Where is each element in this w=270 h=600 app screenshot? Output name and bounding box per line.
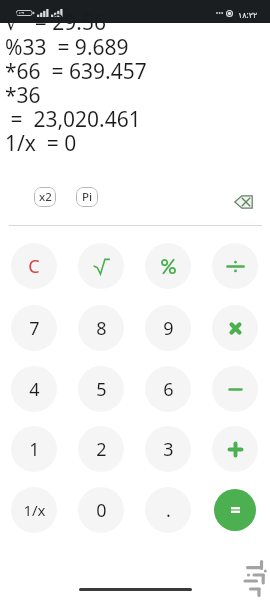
- button[interactable]: .: [145, 487, 191, 533]
- staticText: x2: [39, 189, 52, 205]
- staticText: 2: [96, 437, 107, 462]
- button[interactable]: Equals: [214, 489, 256, 531]
- staticText: 9: [163, 316, 174, 341]
- staticText: 6: [163, 377, 174, 402]
- button[interactable]: 9: [145, 305, 191, 351]
- button[interactable]: Pi: [76, 187, 98, 207]
- staticText: 5: [96, 377, 107, 402]
- staticText: Pi: [82, 189, 93, 205]
- button[interactable]: 6: [145, 366, 191, 412]
- button[interactable]: 3: [145, 426, 191, 472]
- button[interactable]: 1/x: [11, 487, 57, 533]
- button[interactable]: 1: [11, 426, 57, 472]
- button[interactable]: 0: [78, 487, 124, 533]
- button[interactable]: C: [11, 243, 57, 289]
- button[interactable]: 5: [78, 366, 124, 412]
- button[interactable]: x2: [34, 187, 56, 207]
- staticText: 1: [29, 437, 40, 462]
- button[interactable]: Backspace: [230, 190, 257, 213]
- staticText: ۱۸:۲۲: [238, 9, 258, 20]
- staticText: 1/x: [23, 500, 46, 520]
- staticText: .: [166, 498, 171, 523]
- button[interactable]: 7: [11, 305, 57, 351]
- button[interactable]: Minus: [212, 366, 258, 412]
- button[interactable]: Square root: [78, 243, 124, 289]
- button[interactable]: Multiply: [212, 305, 258, 351]
- staticText: C: [28, 254, 40, 279]
- staticText: 3: [163, 437, 174, 462]
- staticText: √ = 29.56 %33 = 9.689 *66 = 639.457 *36 …: [5, 8, 147, 157]
- staticText: 4: [29, 377, 40, 402]
- staticText: 8: [96, 316, 107, 341]
- button[interactable]: 8: [78, 305, 124, 351]
- button[interactable]: 2: [78, 426, 124, 472]
- staticText: 0: [96, 498, 107, 523]
- button[interactable]: Percent: [145, 243, 191, 289]
- button[interactable]: Divide: [212, 243, 258, 289]
- button[interactable]: Plus: [212, 426, 258, 472]
- staticText: 7: [29, 316, 40, 341]
- button[interactable]: 4: [11, 366, 57, 412]
